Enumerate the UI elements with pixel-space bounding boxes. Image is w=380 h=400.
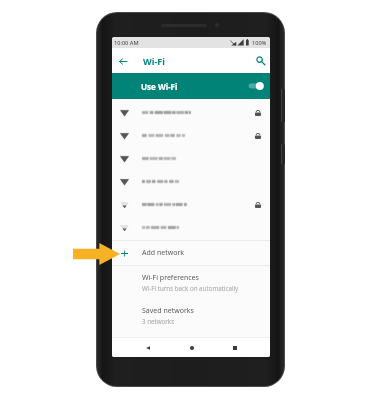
staticText: 3 networks	[142, 317, 175, 325]
button[interactable]: Navigate up	[112, 48, 134, 73]
button[interactable]: Add network	[112, 241, 270, 265]
staticText: Wi-Fi	[143, 55, 165, 67]
button[interactable]	[112, 101, 270, 124]
staticText: Saved networks	[142, 306, 194, 316]
button[interactable]: Back	[140, 340, 155, 355]
button[interactable]	[112, 124, 270, 147]
button[interactable]	[112, 216, 270, 239]
staticText: Use Wi-Fi	[141, 81, 178, 92]
button[interactable]: Wi-Fi preferences	[112, 268, 270, 296]
staticText: Wi-Fi turns back on automatically	[142, 284, 239, 292]
staticText: 10:00 AM	[114, 39, 139, 47]
button[interactable]: Recent apps	[227, 340, 242, 355]
button[interactable]	[112, 170, 270, 193]
staticText: Add network	[142, 248, 185, 258]
button[interactable]: Search	[250, 48, 270, 73]
button[interactable]: Use Wi-Fi	[112, 73, 270, 99]
staticText: Wi-Fi preferences	[142, 273, 199, 283]
staticText: 100%	[252, 39, 267, 47]
button[interactable]: Home	[184, 340, 199, 355]
button[interactable]	[112, 147, 270, 170]
button[interactable]	[112, 193, 270, 216]
button[interactable]: Saved networks	[112, 301, 270, 329]
